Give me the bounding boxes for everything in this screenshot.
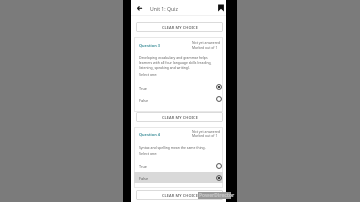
staticText: CLEAR MY CHOICE [162,193,198,198]
button[interactable] [134,172,223,183]
staticText: Select one: [139,151,158,156]
button[interactable]: Option [214,161,224,171]
staticText: PowerDirector [199,192,235,199]
staticText: CLEAR MY CHOICE [162,25,198,30]
button[interactable] [134,93,223,104]
button[interactable]: CLEAR MY CHOICE [136,190,223,200]
button[interactable]: Back [135,3,145,13]
button[interactable]: CLEAR MY CHOICE [136,22,223,32]
button[interactable]: Bookmark [216,3,226,13]
staticText: Marked out of 1 [192,133,218,138]
staticText: CLEAR MY CHOICE [162,115,198,120]
button[interactable] [134,81,223,92]
button[interactable] [134,160,223,171]
staticText: Question 4 [139,132,160,137]
staticText: Developing vocabulary and grammar helps … [139,55,215,70]
staticText: Unit 1: Quiz [150,6,178,13]
button[interactable]: Option [214,94,224,104]
staticText: Marked out of 1 [192,45,218,50]
staticText: Not yet answered [192,40,221,45]
staticText: Question 3 [139,43,160,48]
staticText: False [139,98,149,103]
button[interactable]: Selected option [214,82,224,92]
staticText: False [139,176,149,181]
staticText: Syntax and spelling mean the same thing. [139,145,215,150]
button[interactable]: CLEAR MY CHOICE [136,112,223,122]
button[interactable]: Selected option [214,173,224,183]
staticText: Select one: [139,72,158,77]
staticText: Not yet answered [192,129,221,134]
staticText: True [139,164,147,169]
staticText: True [139,86,147,91]
